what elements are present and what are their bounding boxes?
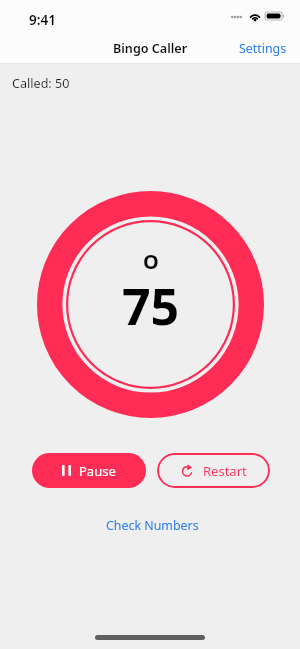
button[interactable]: Settings bbox=[226, 33, 300, 64]
staticText: 9:41 bbox=[29, 11, 56, 29]
staticText: Called: 50 bbox=[12, 75, 70, 92]
button[interactable]: Pause bbox=[32, 453, 146, 488]
button[interactable]: Restart bbox=[157, 453, 270, 488]
staticText: Restart bbox=[203, 462, 247, 480]
staticText: Bingo Caller bbox=[113, 40, 188, 57]
button[interactable]: Check Numbers bbox=[96, 510, 209, 541]
staticText: 75 bbox=[122, 272, 180, 340]
staticText: Check Numbers bbox=[106, 517, 199, 534]
staticText: O bbox=[143, 248, 159, 275]
staticText: Settings bbox=[239, 40, 287, 57]
staticText: Pause bbox=[79, 462, 116, 480]
other: Current call O 75 bbox=[37, 191, 264, 418]
